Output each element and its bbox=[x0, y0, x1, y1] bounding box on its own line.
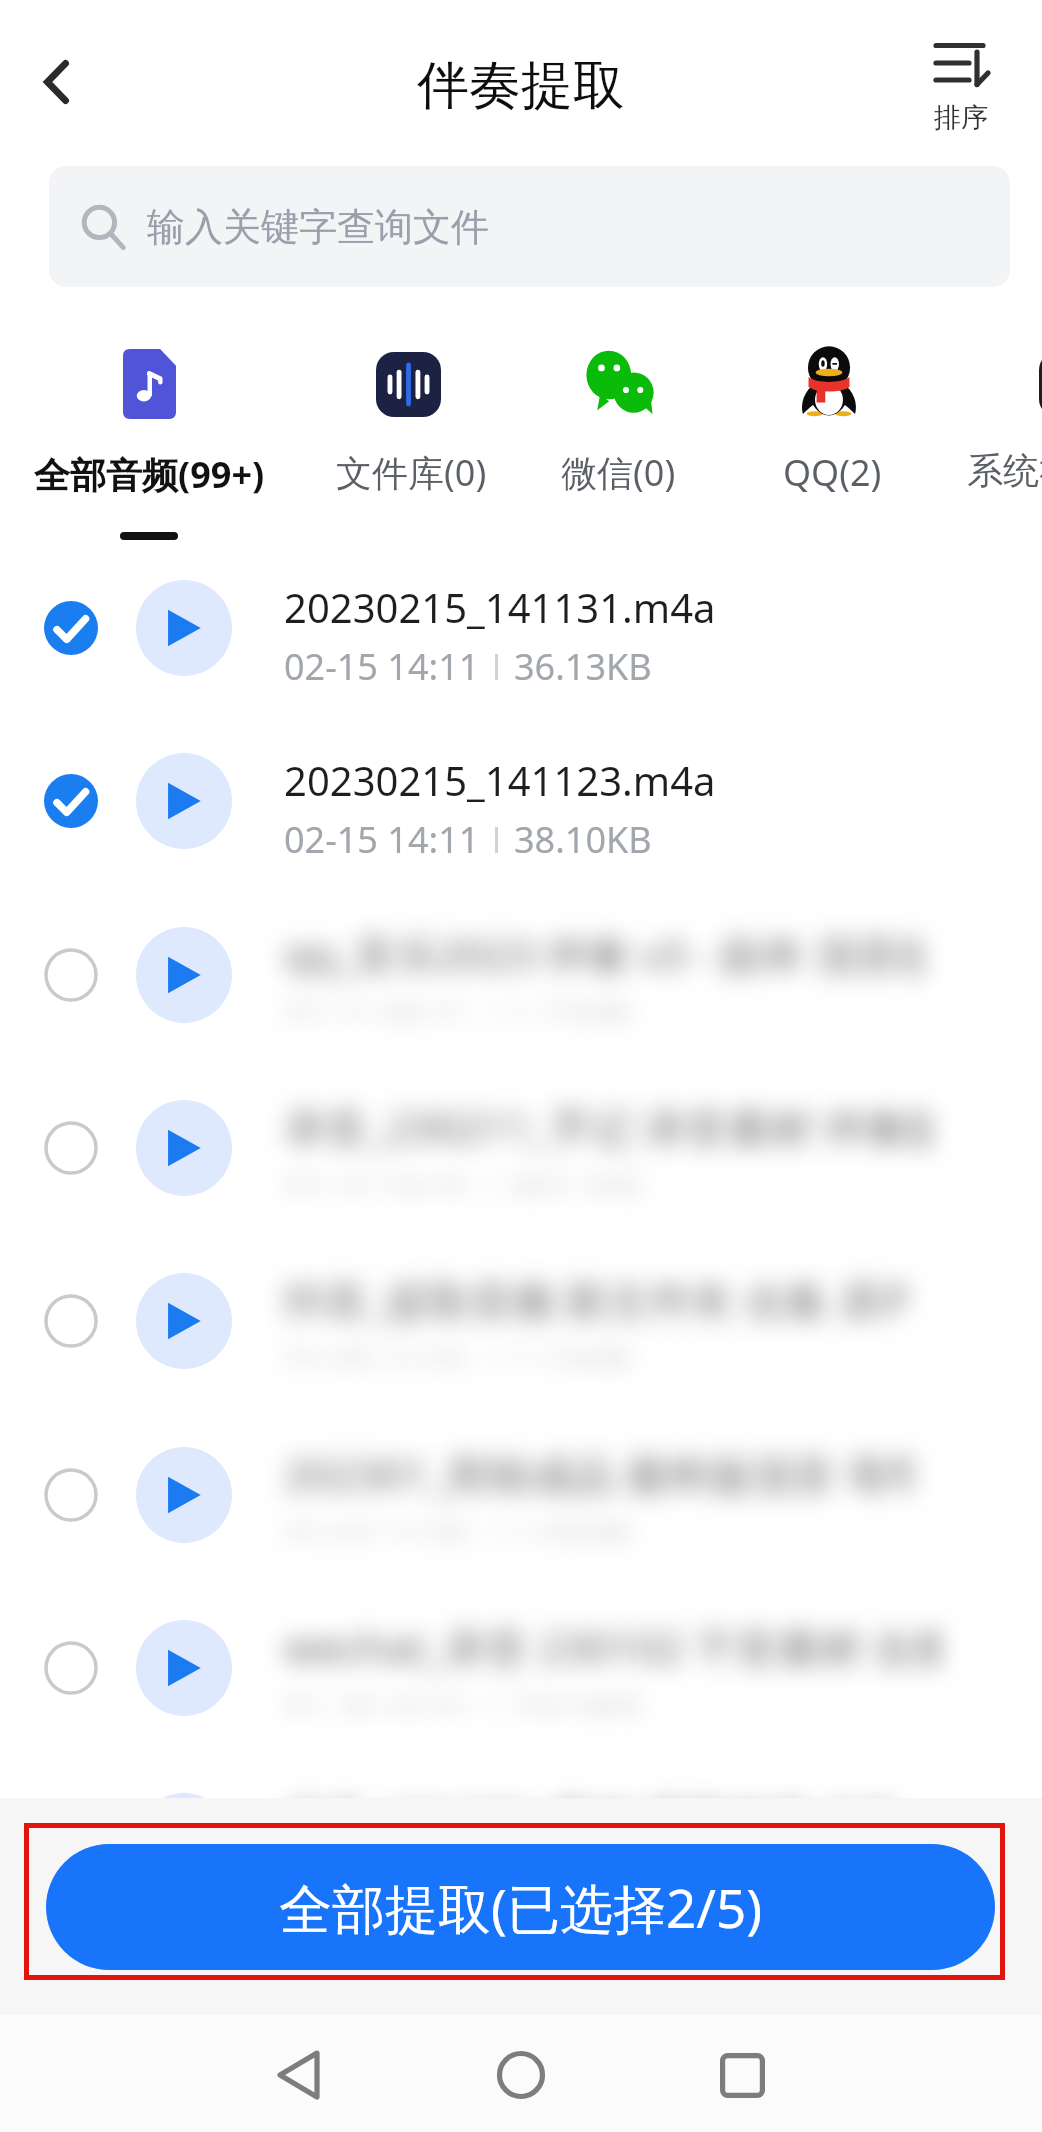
button[interactable]: 全部音频(99+) bbox=[34, 450, 265, 499]
button[interactable]: 系统社 bbox=[967, 448, 1042, 493]
button[interactable]: Select bbox=[0, 1755, 1042, 1927]
staticText: 文件库(0) bbox=[336, 448, 487, 497]
staticText: 伴奏提取 bbox=[417, 53, 625, 119]
button[interactable]: Play bbox=[136, 1447, 232, 1543]
staticText: wechat_录音 230102 干音素材 合集 bbox=[284, 1618, 958, 1675]
button[interactable]: Select bbox=[0, 1582, 1042, 1754]
button[interactable]: Select bbox=[20, 750, 122, 852]
staticText: 排序 bbox=[934, 101, 988, 135]
button[interactable]: QQ(2) bbox=[783, 448, 882, 497]
button[interactable]: Play bbox=[136, 1793, 232, 1889]
staticText: 01-20 10:14 丨512.7KB bbox=[284, 1860, 642, 1906]
button[interactable]: Select bbox=[0, 1062, 1042, 1234]
staticText: 全部音频(99+) bbox=[34, 450, 265, 499]
button[interactable]: Play bbox=[136, 927, 232, 1023]
staticText: 录音_221230_素材 原声伴奏 合集 bbox=[284, 1791, 908, 1848]
button[interactable]: Play bbox=[136, 580, 232, 676]
staticText: 微信(0) bbox=[561, 448, 676, 497]
button[interactable]: Select bbox=[20, 577, 122, 679]
button[interactable]: Select bbox=[20, 1097, 122, 1199]
staticText: 38.10KB bbox=[514, 815, 652, 864]
staticText: 02-15 14:11 bbox=[284, 642, 480, 691]
button[interactable]: Play bbox=[136, 1273, 232, 1369]
button[interactable]: Select bbox=[20, 1444, 122, 1546]
button[interactable]: Select bbox=[20, 924, 122, 1026]
staticText: 202301_剪辑成品 最终版混音 母带 bbox=[284, 1445, 931, 1502]
button[interactable]: 全部提取(已选择2/5) bbox=[46, 1844, 995, 1970]
staticText: QQ(2) bbox=[783, 448, 882, 497]
staticText: 02-15 14:11 bbox=[284, 815, 480, 864]
button[interactable]: Play bbox=[136, 1620, 232, 1716]
button[interactable]: 微信(0) bbox=[561, 448, 676, 497]
button[interactable]: Back bbox=[258, 2035, 338, 2115]
button[interactable]: 输入关键字查询文件 bbox=[49, 166, 1010, 287]
button[interactable]: 排序 bbox=[916, 20, 1026, 150]
button[interactable]: Recents bbox=[702, 2035, 782, 2115]
staticText: 输入关键字查询文件 bbox=[147, 203, 489, 251]
staticText: 全部提取(已选择2/5) bbox=[279, 1871, 763, 1943]
button[interactable]: Select bbox=[20, 1790, 122, 1892]
button[interactable]: 文件库(0) bbox=[336, 448, 487, 497]
button[interactable]: Play bbox=[136, 1100, 232, 1196]
staticText: 抖音_提取音频 新文件夹 合集 原声 bbox=[284, 1271, 924, 1328]
button[interactable]: Play bbox=[136, 753, 232, 849]
button[interactable]: Select bbox=[0, 1235, 1042, 1407]
staticText: 20230215_141123.m4a bbox=[284, 753, 716, 807]
button[interactable]: Select bbox=[0, 715, 1042, 887]
button[interactable]: Select bbox=[0, 1409, 1042, 1581]
button[interactable]: Select bbox=[20, 1617, 122, 1719]
staticText: 录音_230211_手记 录音素材 伴奏版 bbox=[284, 1098, 950, 1155]
button[interactable]: Select bbox=[20, 1270, 122, 1372]
button[interactable]: Select bbox=[0, 542, 1042, 714]
staticText: 系统社 bbox=[967, 448, 1042, 493]
button[interactable]: Home bbox=[481, 2035, 561, 2115]
staticText: 20230215_141131.m4a bbox=[284, 580, 716, 634]
staticText: 36.13KB bbox=[514, 642, 652, 691]
button[interactable]: Back bbox=[8, 34, 104, 130]
button[interactable]: Select bbox=[0, 889, 1042, 1061]
staticText: qq_音乐2023 伴奏 v3 - 副本 混音版 bbox=[284, 925, 942, 982]
